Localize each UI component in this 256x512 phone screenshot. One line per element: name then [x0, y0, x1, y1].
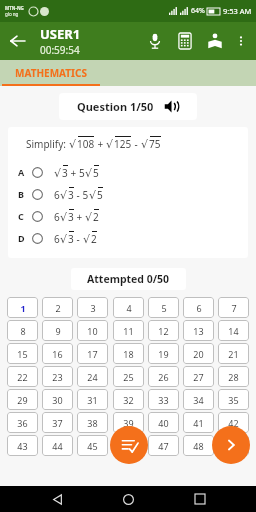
- staticText: √: [60, 189, 68, 202]
- button[interactable]: 39: [113, 412, 144, 433]
- button[interactable]: 28: [218, 366, 249, 387]
- staticText: A: [18, 166, 32, 178]
- staticText: 9: [55, 325, 61, 337]
- staticText: 2: [93, 210, 99, 224]
- staticText: 2: [55, 302, 61, 314]
- staticText: 3: [62, 166, 68, 180]
- staticText: 22: [17, 371, 28, 383]
- button[interactable]: 31: [77, 389, 108, 410]
- button[interactable]: 35: [218, 389, 249, 410]
- button[interactable]: Back: [0, 24, 34, 58]
- staticText: 38: [87, 417, 98, 429]
- staticText: 1: [20, 302, 26, 314]
- staticText: 17: [87, 348, 98, 360]
- staticText: 23: [52, 371, 63, 383]
- button[interactable]: 49: [218, 435, 249, 456]
- button[interactable]: 10: [77, 320, 108, 341]
- button[interactable]: 14: [218, 320, 249, 341]
- button[interactable]: Next question: [212, 426, 250, 464]
- staticText: 36: [17, 417, 28, 429]
- staticText: 6: [54, 188, 60, 202]
- button[interactable]: 8: [7, 320, 38, 341]
- button[interactable]: 38: [77, 412, 108, 433]
- staticText: 30: [52, 394, 63, 406]
- button[interactable]: 23: [42, 366, 73, 387]
- button[interactable]: 34: [183, 389, 214, 410]
- button[interactable]: 24: [77, 366, 108, 387]
- button[interactable]: 4: [113, 297, 144, 318]
- button[interactable]: C: [18, 205, 238, 227]
- button[interactable]: 27: [183, 366, 214, 387]
- button[interactable]: 45: [77, 435, 108, 456]
- staticText: √: [85, 167, 93, 180]
- button[interactable]: 11: [113, 320, 144, 341]
- button[interactable]: 29: [7, 389, 38, 410]
- button[interactable]: 19: [148, 343, 179, 364]
- button[interactable]: 5: [148, 297, 179, 318]
- button[interactable]: B: [18, 183, 238, 205]
- button[interactable]: Recent apps: [185, 486, 215, 512]
- button[interactable]: 40: [148, 412, 179, 433]
- button[interactable]: Question 1/50: [59, 93, 197, 120]
- button[interactable]: 48: [183, 435, 214, 456]
- button[interactable]: More options: [230, 30, 252, 52]
- button[interactable]: 2: [42, 297, 73, 318]
- button[interactable]: 43: [7, 435, 38, 456]
- staticText: 39: [123, 417, 134, 429]
- button[interactable]: 36: [7, 412, 38, 433]
- button[interactable]: 26: [148, 366, 179, 387]
- staticText: 5: [161, 302, 167, 314]
- button[interactable]: 44: [42, 435, 73, 456]
- button[interactable]: 47: [148, 435, 179, 456]
- staticText: 6: [54, 232, 60, 246]
- staticText: 13: [193, 325, 204, 337]
- button[interactable]: 17: [77, 343, 108, 364]
- staticText: √: [83, 233, 91, 246]
- staticText: -: [132, 137, 141, 151]
- button[interactable]: 3: [77, 297, 108, 318]
- button[interactable]: D: [18, 227, 238, 249]
- button[interactable]: Home: [113, 486, 143, 512]
- staticText: 00:59:54: [40, 43, 80, 57]
- button[interactable]: 1: [7, 297, 38, 318]
- staticText: √: [54, 167, 62, 180]
- button[interactable]: MATHEMATICS: [0, 60, 102, 86]
- button[interactable]: 16: [42, 343, 73, 364]
- button[interactable]: 6: [183, 297, 214, 318]
- button[interactable]: 25: [113, 366, 144, 387]
- staticText: 6: [196, 302, 202, 314]
- button[interactable]: 37: [42, 412, 73, 433]
- button[interactable]: 15: [7, 343, 38, 364]
- button[interactable]: Back: [42, 486, 72, 512]
- staticText: D: [18, 232, 32, 244]
- button[interactable]: 21: [218, 343, 249, 364]
- button[interactable]: 9: [42, 320, 73, 341]
- button[interactable]: 32: [113, 389, 144, 410]
- button[interactable]: 20: [183, 343, 214, 364]
- staticText: 26: [158, 371, 169, 383]
- staticText: 25: [123, 371, 134, 383]
- button[interactable]: Calculator: [170, 26, 200, 56]
- button[interactable]: 33: [148, 389, 179, 410]
- button[interactable]: 46: [113, 435, 144, 456]
- button[interactable]: 41: [183, 412, 214, 433]
- button[interactable]: 12: [148, 320, 179, 341]
- button[interactable]: 18: [113, 343, 144, 364]
- button[interactable]: 13: [183, 320, 214, 341]
- staticText: √: [85, 211, 93, 224]
- staticText: MATHEMATICS: [15, 66, 87, 80]
- button[interactable]: 7: [218, 297, 249, 318]
- button[interactable]: 30: [42, 389, 73, 410]
- staticText: 47: [158, 440, 169, 452]
- staticText: 41: [193, 417, 204, 429]
- staticText: √: [89, 189, 97, 202]
- button[interactable]: Voice: [140, 26, 170, 56]
- button[interactable]: 42: [218, 412, 249, 433]
- button[interactable]: Submit: [110, 426, 148, 464]
- button[interactable]: Dictionary: [200, 26, 230, 56]
- staticText: 16: [52, 348, 63, 360]
- button[interactable]: 22: [7, 366, 38, 387]
- staticText: 5: [93, 166, 99, 180]
- button[interactable]: A: [18, 161, 238, 183]
- staticText: 6: [54, 210, 60, 224]
